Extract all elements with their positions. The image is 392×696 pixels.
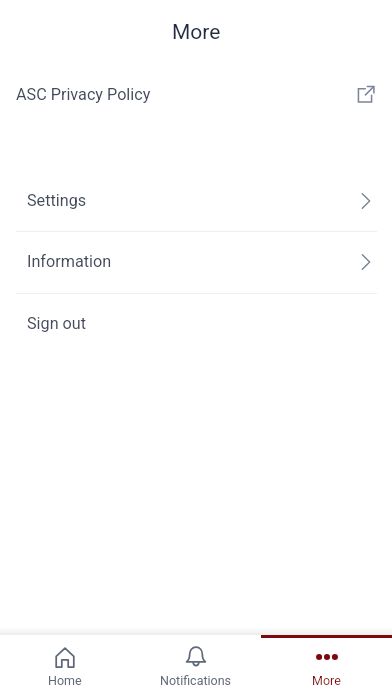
button[interactable]: Settings [0, 169, 392, 231]
staticText: Sign out [27, 314, 87, 333]
staticText: Home [48, 673, 82, 688]
staticText: ASC Privacy Policy [16, 85, 151, 104]
button[interactable]: Information [0, 230, 392, 292]
staticText: Information [27, 252, 112, 271]
button[interactable]: More [261, 635, 392, 696]
staticText: Notifications [160, 673, 232, 688]
button[interactable]: Home [0, 635, 130, 696]
other: Open link [354, 82, 378, 106]
staticText: Settings [27, 191, 87, 210]
staticText: More [172, 20, 221, 45]
button[interactable]: Notifications [130, 635, 261, 696]
staticText: More [312, 673, 341, 688]
button[interactable]: ASC Privacy Policy [0, 64, 392, 124]
button[interactable]: Sign out [0, 292, 392, 354]
